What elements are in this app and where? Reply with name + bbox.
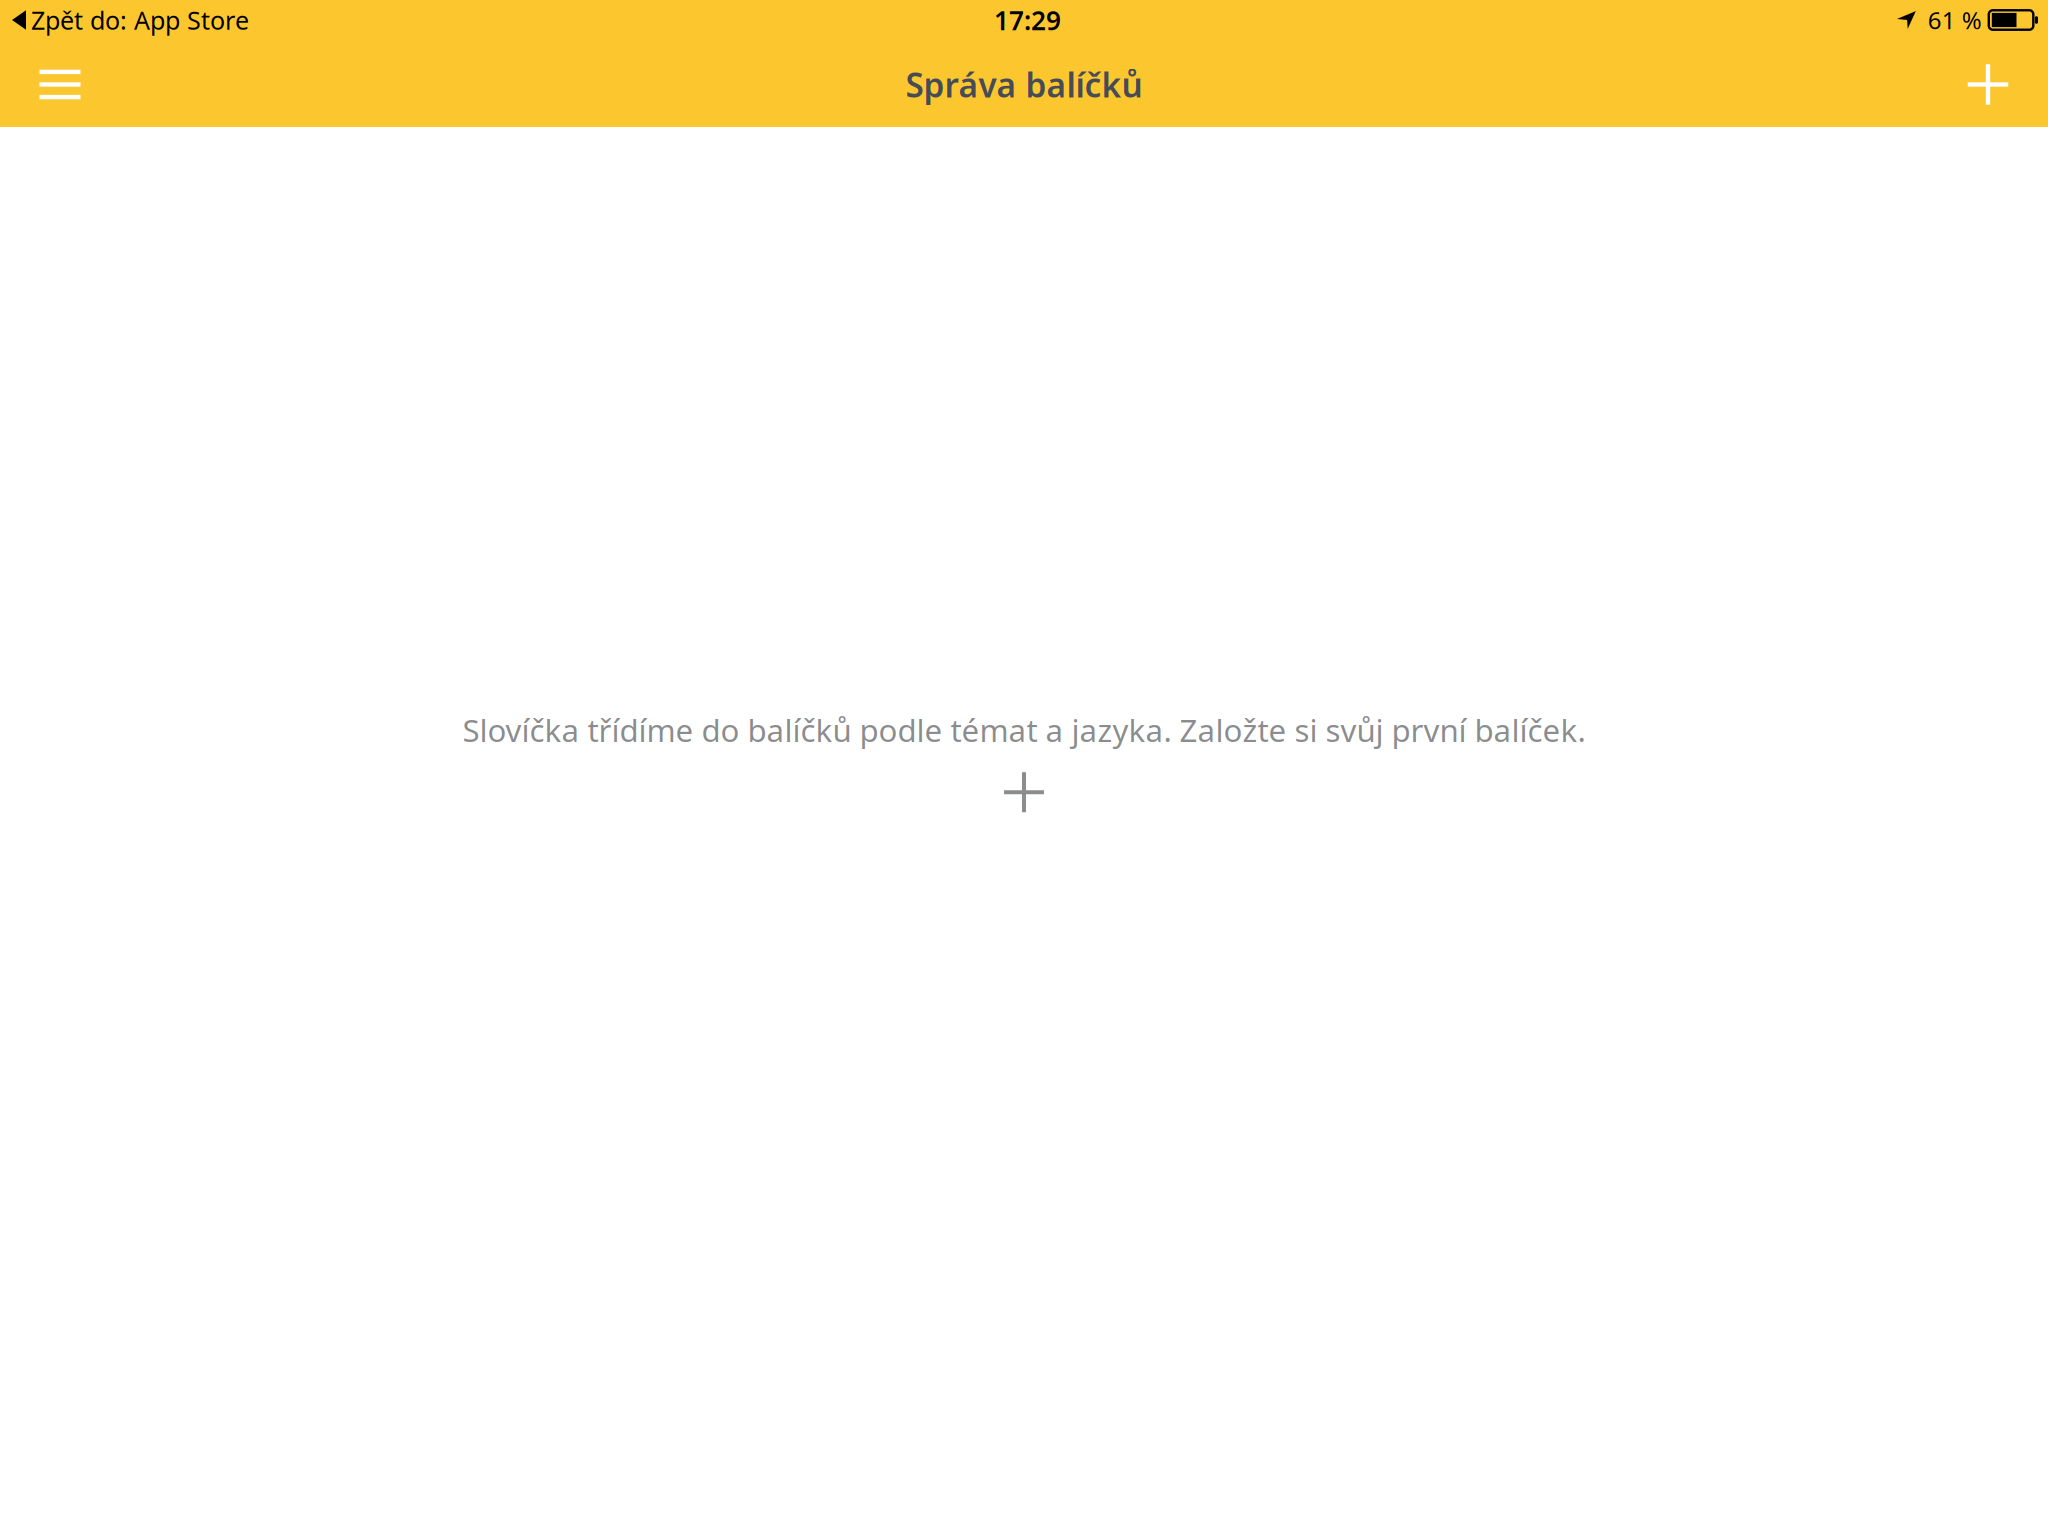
staticText: Zpět do: App Store — [31, 3, 249, 37]
staticText: Správa balíčků — [905, 62, 1142, 107]
button[interactable]: Menu — [0, 42, 100, 127]
staticText: 17:29 — [994, 2, 1061, 38]
staticText: Slovíčka třídíme do balíčků podle témat … — [462, 709, 1585, 751]
button[interactable]: Add deck — [988, 765, 1060, 819]
staticText: 61 % — [1928, 4, 1982, 36]
button[interactable]: New deck — [1948, 42, 2048, 127]
button[interactable]: Zpět do: App Store — [0, 0, 259, 41]
